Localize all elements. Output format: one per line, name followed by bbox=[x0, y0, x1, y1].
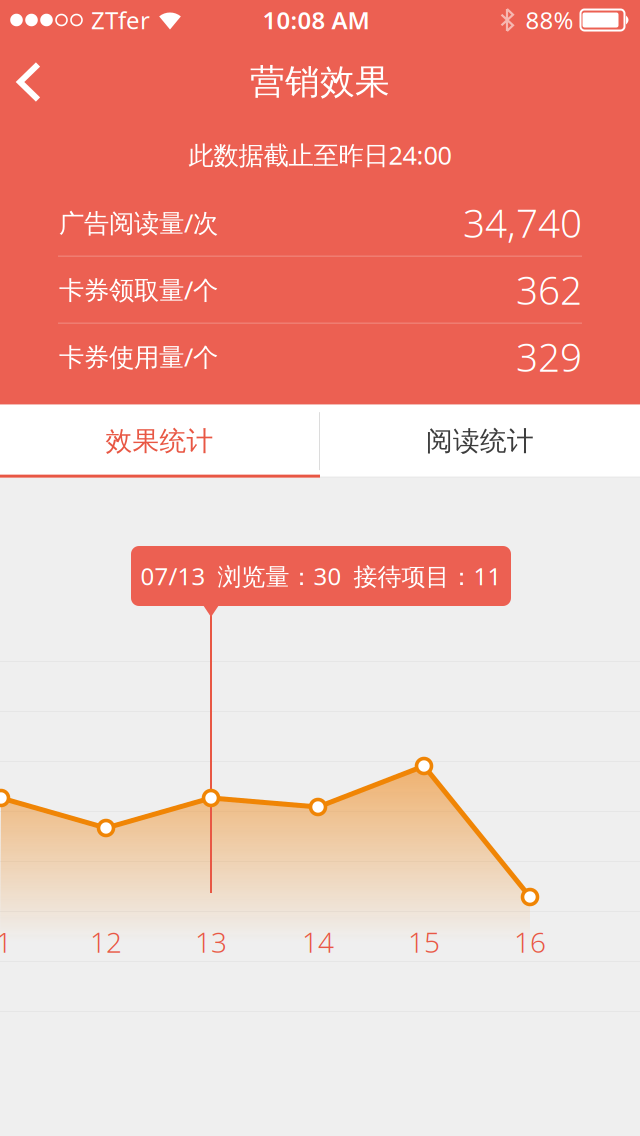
staticText: 07/13 浏览量：30 接待项目：11 bbox=[140, 560, 501, 592]
staticText: 卡券领取量/个 bbox=[59, 273, 218, 306]
staticText: 卡券使用量/个 bbox=[59, 340, 218, 373]
staticText: 阅读统计 bbox=[426, 425, 534, 458]
staticText: 效果统计 bbox=[105, 425, 213, 458]
staticText: 15 bbox=[408, 923, 440, 961]
button[interactable]: 效果统计 bbox=[0, 405, 319, 478]
staticText: 14 bbox=[302, 923, 334, 961]
staticText: 16 bbox=[514, 923, 546, 961]
button[interactable]: Back bbox=[0, 51, 45, 112]
staticText: 13 bbox=[195, 923, 227, 961]
staticText: 10:08 AM bbox=[262, 4, 369, 36]
button[interactable]: 阅读统计 bbox=[320, 405, 640, 478]
staticText: 1 bbox=[0, 923, 12, 961]
staticText: 此数据截止至昨日24:00 bbox=[188, 138, 451, 172]
staticText: 营销效果 bbox=[250, 61, 390, 103]
staticText: 34,740 bbox=[463, 197, 582, 248]
staticText: 12 bbox=[90, 923, 122, 961]
staticText: 362 bbox=[516, 264, 582, 315]
staticText: 329 bbox=[516, 331, 582, 382]
staticText: ZTfer bbox=[91, 4, 150, 36]
staticText: 广告阅读量/次 bbox=[59, 206, 218, 239]
staticText: 88% bbox=[525, 4, 573, 36]
